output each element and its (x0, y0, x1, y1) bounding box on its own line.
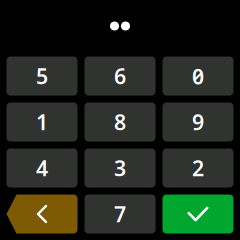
button[interactable]: 7 (84, 194, 155, 233)
button[interactable]: 6 (84, 56, 155, 95)
staticText: 5 (36, 62, 48, 90)
staticText: 1 (36, 108, 48, 136)
button[interactable]: 1 (6, 102, 77, 141)
button[interactable]: Confirm (162, 194, 233, 233)
button[interactable]: Delete (6, 194, 77, 233)
staticText: 4 (36, 154, 48, 182)
button[interactable]: 0 (162, 56, 233, 95)
staticText: 6 (114, 62, 126, 90)
staticText: 2 (192, 154, 204, 182)
staticText: 3 (114, 154, 126, 182)
button[interactable]: 2 (162, 148, 233, 187)
staticText: 7 (114, 200, 126, 228)
staticText: 0 (192, 62, 204, 90)
staticText: 9 (192, 108, 204, 136)
button[interactable]: 9 (162, 102, 233, 141)
button[interactable]: 3 (84, 148, 155, 187)
staticText: 8 (114, 108, 126, 136)
button[interactable]: 5 (6, 56, 77, 95)
button[interactable]: 8 (84, 102, 155, 141)
button[interactable]: 4 (6, 148, 77, 187)
